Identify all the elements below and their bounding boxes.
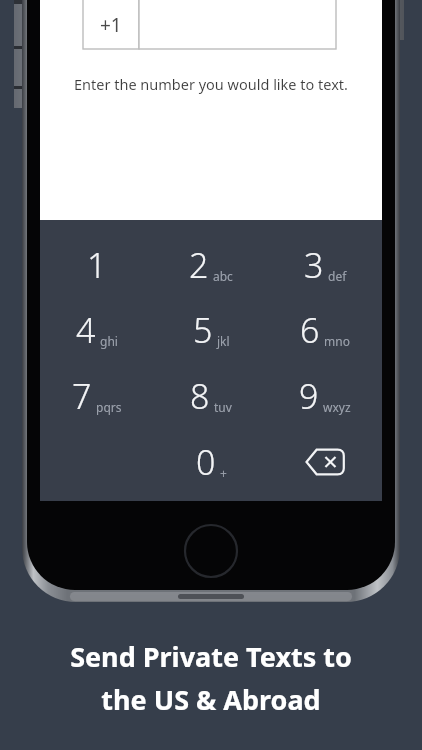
button[interactable]: 7: [40, 363, 154, 429]
staticText: 6: [300, 307, 320, 353]
staticText: 3: [304, 242, 324, 288]
staticText: wxyz: [323, 399, 351, 415]
staticText: 9: [299, 373, 319, 419]
staticText: pqrs: [96, 399, 122, 415]
button[interactable]: 5: [154, 297, 268, 363]
staticText: ghi: [100, 333, 118, 349]
staticText: 8: [190, 373, 210, 419]
button[interactable]: 3: [268, 232, 382, 297]
button[interactable]: 4: [40, 297, 154, 363]
button[interactable]: 2: [154, 232, 268, 297]
staticText: +: [220, 465, 227, 481]
staticText: 5: [193, 307, 213, 353]
staticText: 1: [87, 242, 107, 288]
staticText: 4: [76, 307, 96, 353]
button[interactable]: 9: [268, 363, 382, 429]
staticText: 7: [72, 373, 92, 419]
button[interactable]: 1: [40, 232, 154, 297]
button[interactable]: +1: [83, 0, 336, 49]
staticText: Send Private Texts to: [70, 638, 352, 675]
staticText: def: [328, 268, 347, 284]
staticText: mno: [324, 333, 350, 349]
staticText: abc: [213, 268, 233, 284]
staticText: the US & Abroad: [101, 681, 321, 718]
button[interactable]: 0: [154, 429, 268, 495]
button[interactable]: 6: [268, 297, 382, 363]
staticText: 0: [196, 439, 216, 485]
staticText: tuv: [214, 399, 232, 415]
staticText: Enter the number you would like to text.: [74, 74, 348, 94]
staticText: jkl: [217, 333, 230, 349]
staticText: 2: [189, 242, 209, 288]
staticText: +1: [100, 12, 122, 38]
button[interactable]: Backspace: [268, 429, 382, 495]
button[interactable]: 8: [154, 363, 268, 429]
